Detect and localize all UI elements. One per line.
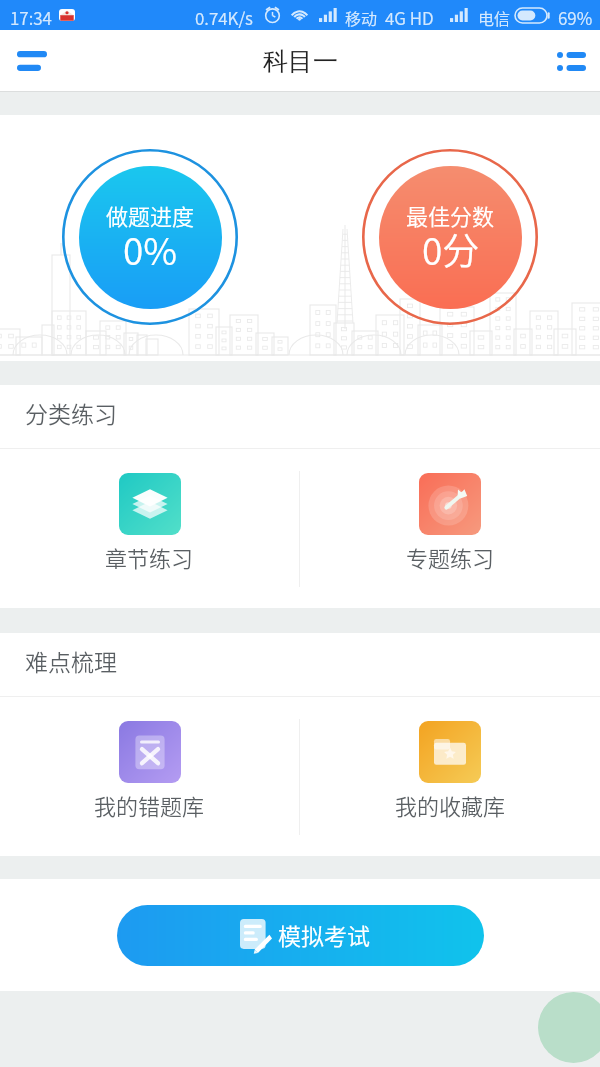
staticText: 做题进度 [106,199,195,231]
button[interactable]: 章节练习 [0,449,299,608]
staticText: 移动 [345,6,378,29]
staticText: 0% [123,222,178,276]
staticText: 4G HD [385,5,434,30]
button[interactable]: List view [538,30,600,92]
staticText: 0.74K/s [195,5,253,30]
button[interactable]: 模拟考试 [117,905,484,966]
staticText: 专题练习 [406,541,495,573]
button[interactable]: 专题练习 [300,449,600,608]
staticText: 章节练习 [105,541,194,573]
button[interactable]: 做题进度 [62,149,238,325]
staticText: 17:34 [10,5,52,30]
staticText: 最佳分数 [406,199,495,231]
button[interactable]: 我的收藏库 [300,697,600,856]
staticText: 69% [558,5,593,30]
staticText: 分类练习 [25,396,117,429]
staticText: 0分 [422,222,480,276]
staticText: 难点梳理 [25,644,117,677]
button[interactable]: 最佳分数 [362,149,538,325]
staticText: 我的收藏库 [395,789,506,821]
button[interactable]: 我的错题库 [0,697,299,856]
staticText: 电信 [478,6,511,29]
button[interactable]: Menu [0,30,62,92]
button[interactable]: Assistant [538,992,600,1063]
staticText: 科目一 [263,46,338,77]
staticText: 我的错题库 [94,789,205,821]
staticText: 模拟考试 [278,918,370,951]
